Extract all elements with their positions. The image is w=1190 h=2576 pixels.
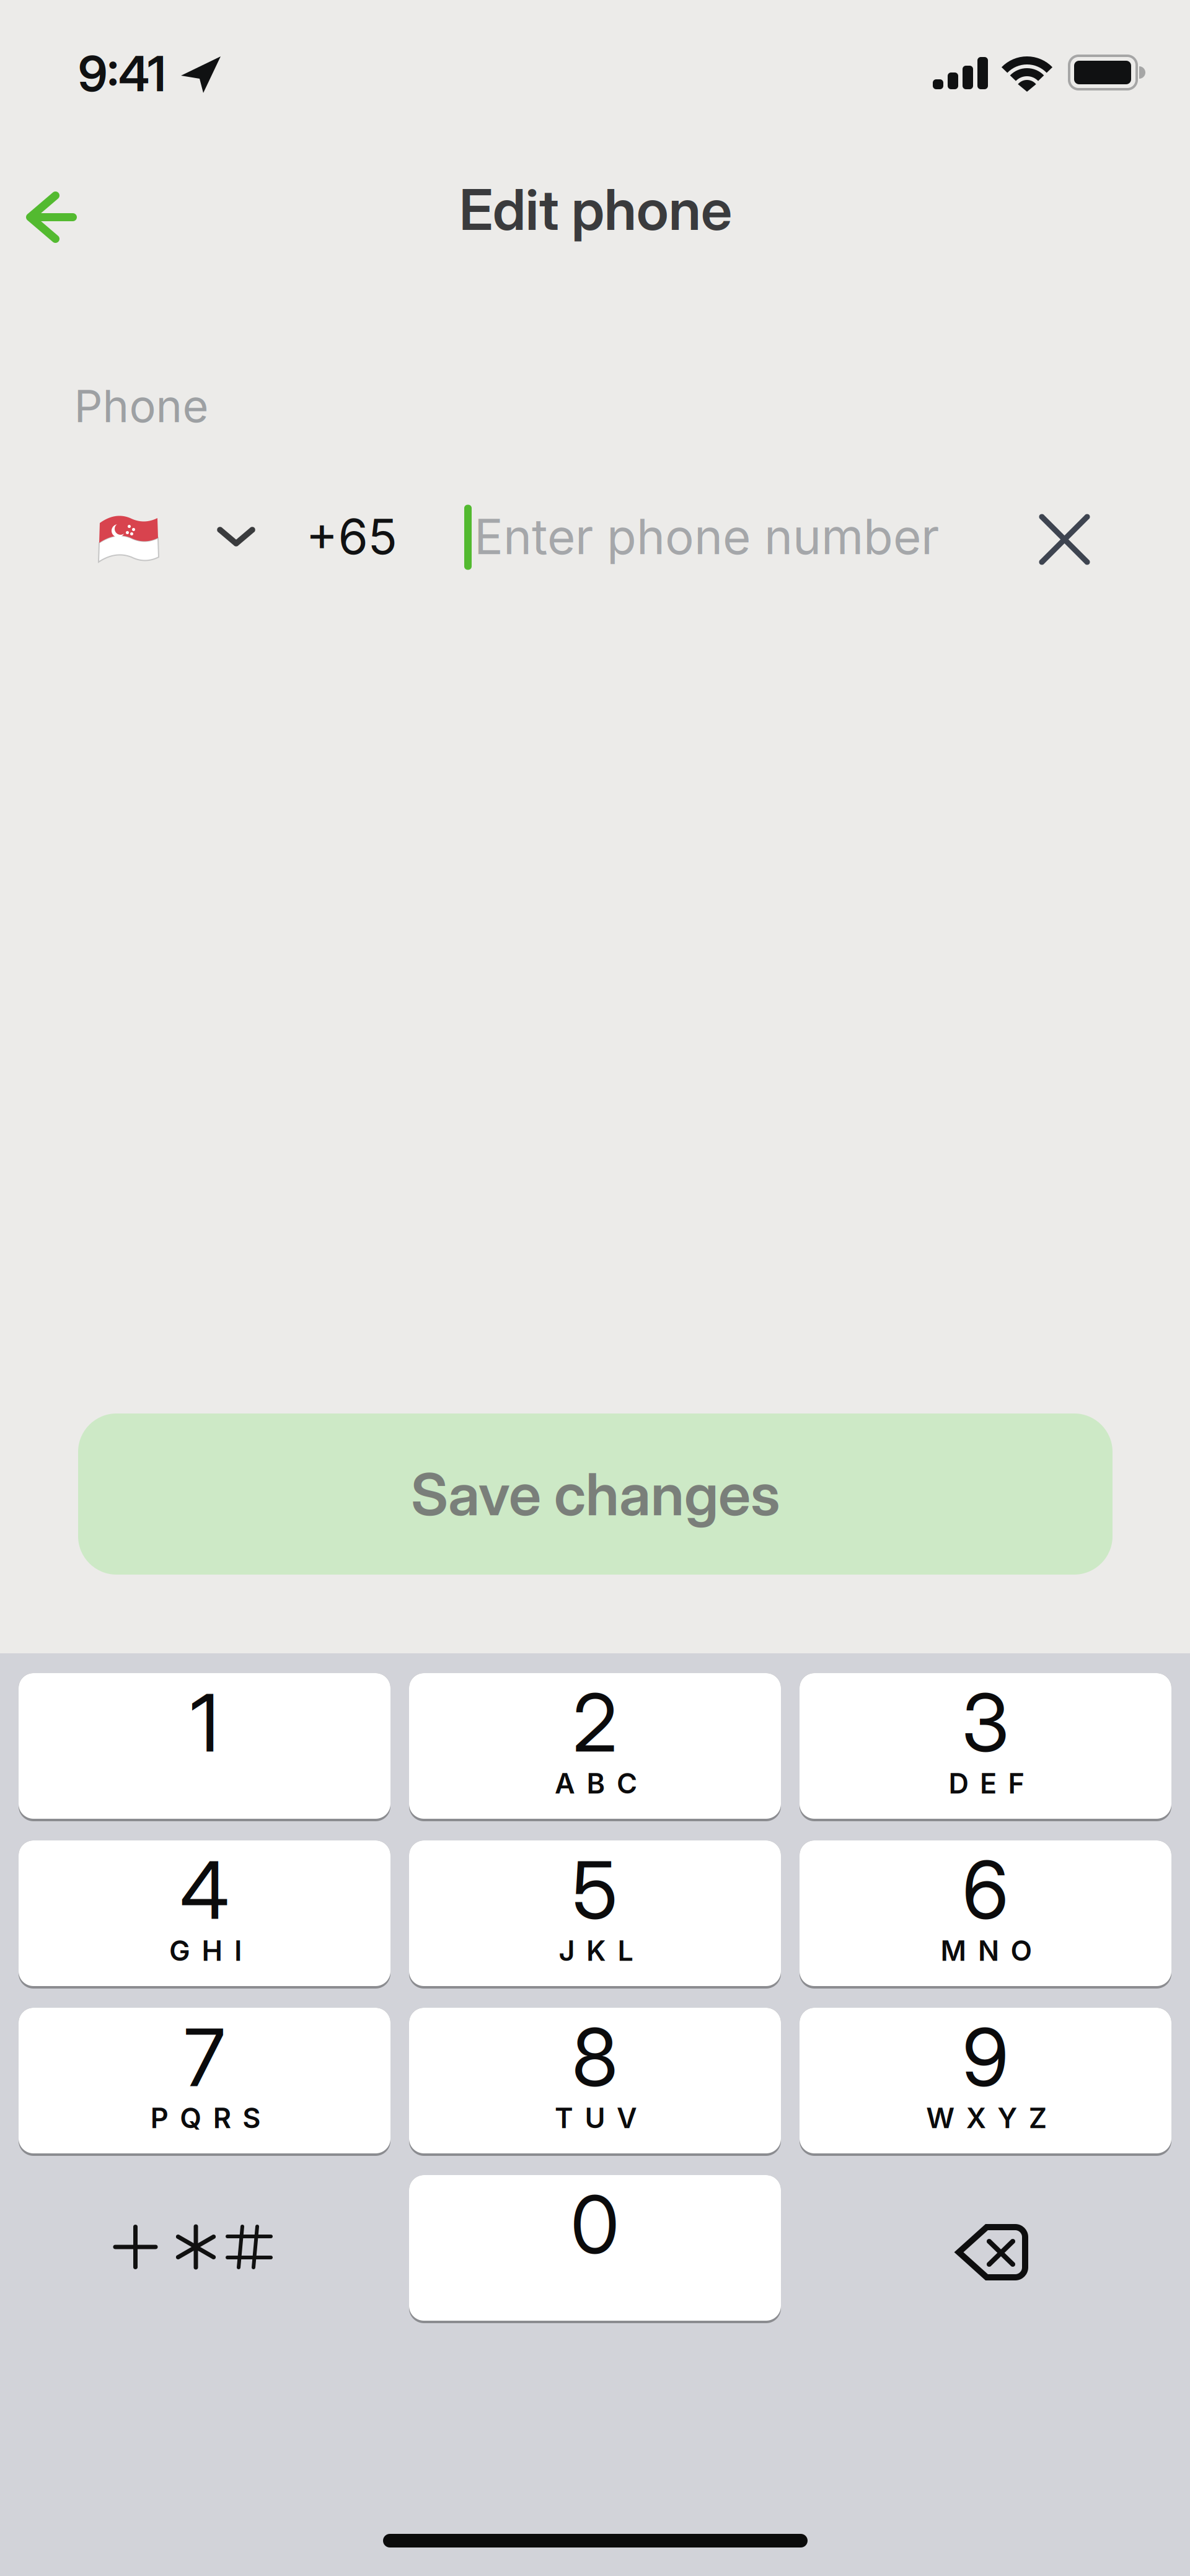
- staticText: 2: [573, 1675, 617, 1771]
- staticText: 9:41: [78, 44, 166, 103]
- button[interactable]: 1: [19, 1673, 390, 1821]
- staticText: Phone: [74, 379, 209, 433]
- button[interactable]: 0: [409, 2175, 781, 2323]
- staticText: 6: [962, 1842, 1009, 1938]
- button[interactable]: Back: [12, 168, 112, 267]
- button[interactable]: Delete: [800, 2175, 1171, 2321]
- staticText: ABC: [555, 1767, 637, 1800]
- staticText: 7: [184, 2009, 225, 2105]
- button[interactable]: 8: [409, 2008, 781, 2156]
- button[interactable]: 5: [409, 1840, 781, 1989]
- staticText: 5: [572, 1842, 618, 1938]
- staticText: 0: [571, 2177, 619, 2273]
- button[interactable]: Select country code: [81, 496, 273, 579]
- button[interactable]: 9: [800, 2008, 1171, 2156]
- button[interactable]: Clear text: [1021, 496, 1108, 583]
- staticText: GHI: [169, 1934, 242, 1968]
- staticText: 4: [180, 1842, 229, 1938]
- staticText: 8: [572, 2009, 618, 2105]
- staticText: 3: [962, 1675, 1009, 1771]
- button[interactable]: More symbols: [19, 2175, 390, 2321]
- staticText: MNO: [941, 1934, 1032, 1968]
- staticText: Enter phone number: [474, 507, 939, 566]
- staticText: DEF: [949, 1767, 1024, 1800]
- button[interactable]: 2: [409, 1673, 781, 1821]
- staticText: JKL: [559, 1934, 633, 1968]
- staticText: Save changes: [411, 1459, 780, 1529]
- staticText: WXYZ: [926, 2101, 1047, 2135]
- staticText: 1: [190, 1675, 219, 1771]
- button[interactable]: Save changes: [78, 1413, 1113, 1575]
- staticText: Edit phone: [459, 175, 732, 243]
- button[interactable]: 7: [19, 2008, 390, 2156]
- button[interactable]: 4: [19, 1840, 390, 1989]
- button[interactable]: 6: [800, 1840, 1171, 1989]
- staticText: 9: [962, 2009, 1009, 2105]
- staticText: PQRS: [150, 2101, 260, 2135]
- staticText: TUV: [555, 2101, 637, 2135]
- button[interactable]: 3: [800, 1673, 1171, 1821]
- staticText: +65: [306, 507, 397, 566]
